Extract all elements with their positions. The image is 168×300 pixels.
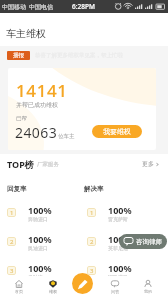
staticText: 解决率: [84, 185, 161, 193]
staticText: 英菲尼迪: [108, 245, 128, 251]
staticText: 100%: [108, 233, 132, 245]
staticText: 奥迪进口: [28, 245, 48, 251]
staticText: 位车主: [58, 133, 75, 140]
staticText: 维权: [49, 289, 57, 294]
button[interactable]: 我要维权: [92, 125, 142, 138]
button[interactable]: 2: [87, 227, 168, 256]
staticText: 已帮: [16, 115, 27, 122]
staticText: 首页: [15, 289, 23, 294]
staticText: 更多: [142, 160, 154, 168]
staticText: 保时捷: [28, 274, 43, 280]
button[interactable]: 发布维权: [72, 273, 93, 294]
staticText: 100%: [108, 262, 132, 274]
staticText: 100%: [28, 262, 52, 274]
staticText: 咨询律师: [136, 238, 162, 246]
staticText: 1: [10, 209, 14, 217]
staticText: 3: [90, 267, 94, 275]
staticText: 播报: [13, 52, 24, 59]
staticText: 100%: [108, 204, 132, 216]
button[interactable]: 首页: [9, 275, 29, 299]
staticText: 3: [10, 267, 14, 275]
staticText: 讴歌进口: [108, 274, 128, 280]
staticText: 1: [90, 209, 94, 217]
staticText: 我的: [144, 289, 152, 294]
button[interactable]: 3: [87, 256, 168, 285]
staticText: 厂家服务: [37, 161, 59, 168]
staticText: 并帮已成功维权: [16, 101, 58, 109]
staticText: 24063: [15, 123, 58, 142]
staticText: 100%: [28, 204, 52, 216]
button[interactable]: 问答: [105, 275, 125, 299]
button[interactable]: 维权: [43, 275, 63, 299]
staticText: 中国移动 中国电信: [2, 3, 54, 11]
staticText: 车主维权: [6, 27, 46, 40]
staticText: 100%: [28, 233, 52, 245]
staticText: 回复率: [7, 185, 84, 193]
button[interactable]: 更多: [142, 160, 161, 168]
button[interactable]: 咨询律师: [119, 234, 167, 249]
staticText: 2: [10, 238, 14, 246]
staticText: TOP榜: [7, 158, 34, 170]
staticText: 奔驰进口: [28, 216, 48, 222]
button[interactable]: 我的: [138, 275, 158, 299]
staticText: 我要维权: [103, 127, 131, 136]
staticText: 14141: [16, 79, 68, 102]
button[interactable]: 1: [87, 198, 168, 227]
button[interactable]: 3: [7, 256, 87, 285]
staticText: 恭喜了解更多维权常见案，帮上忙啦: [35, 52, 123, 59]
staticText: 2: [90, 238, 94, 246]
button[interactable]: 播报: [0, 50, 168, 60]
staticText: 雷克萨斯: [108, 216, 128, 222]
button[interactable]: 1: [7, 198, 87, 227]
staticText: 6:28PM: [72, 2, 95, 11]
button[interactable]: 2: [7, 227, 87, 256]
staticText: 问答: [111, 289, 119, 294]
